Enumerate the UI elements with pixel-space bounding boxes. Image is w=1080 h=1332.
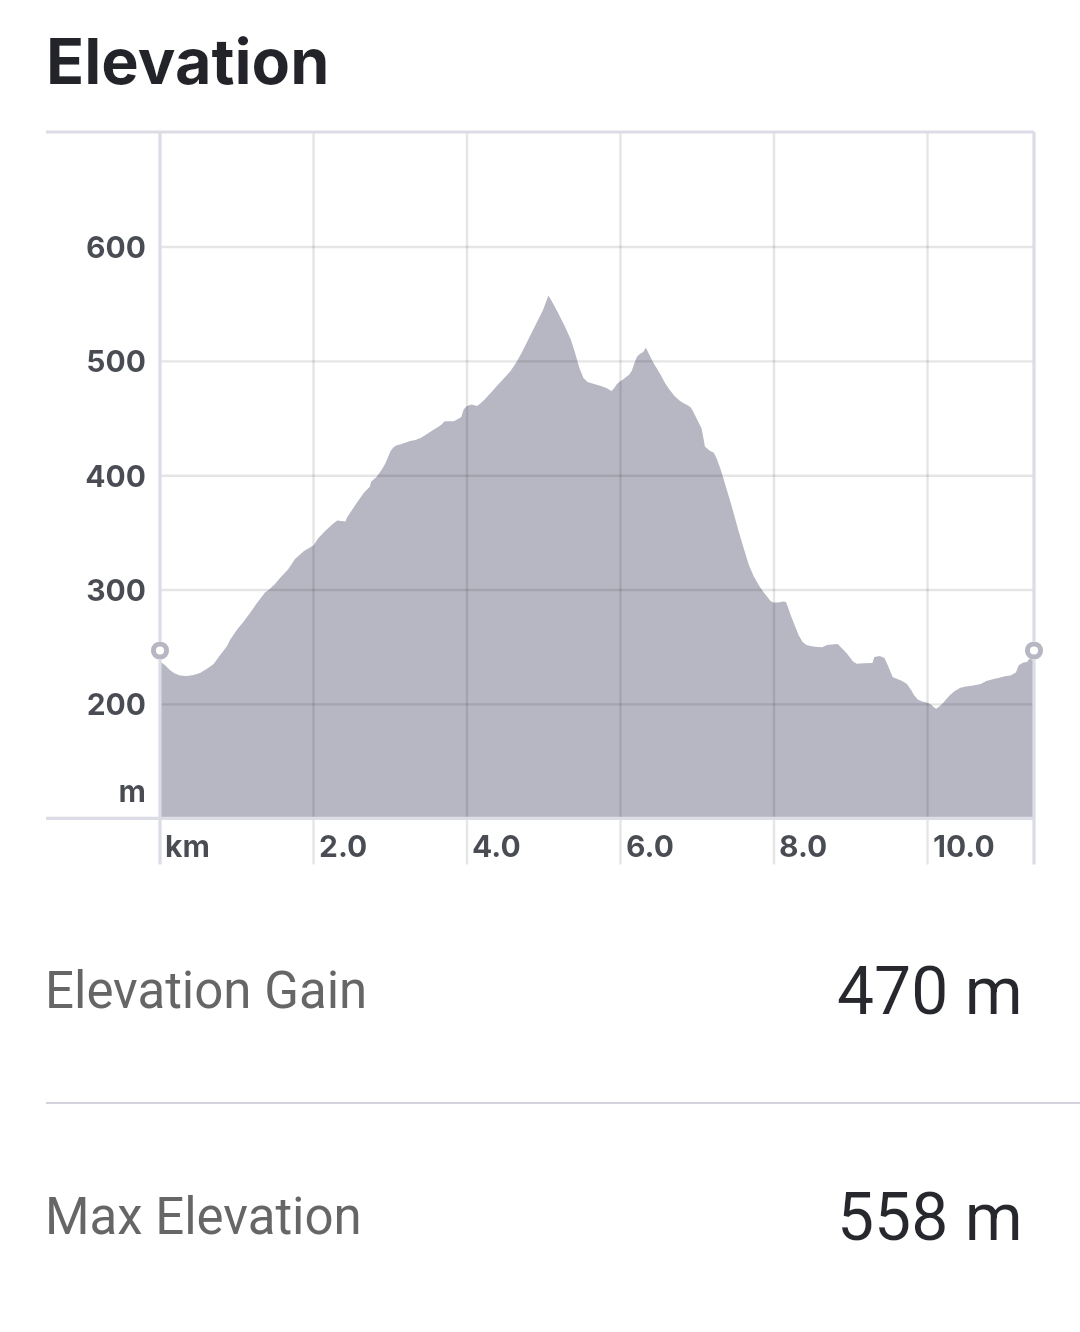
staticText: 400 [0, 458, 146, 494]
staticText: 558 m [837, 1179, 1023, 1256]
staticText: 300 [0, 572, 146, 608]
staticText: 10.0 [933, 828, 995, 864]
staticText: Elevation [46, 23, 330, 99]
staticText: 8.0 [779, 828, 828, 864]
staticText: Max Elevation [45, 1187, 362, 1247]
staticText: km [165, 828, 210, 864]
staticText: 470 m [837, 953, 1023, 1030]
button[interactable]: Elevation Gain [0, 890, 1080, 1092]
staticText: 2.0 [319, 828, 368, 864]
button[interactable]: Max Elevation [0, 1116, 1080, 1318]
staticText: m [0, 773, 146, 809]
staticText: 500 [0, 343, 146, 379]
staticText: Elevation Gain [45, 961, 368, 1021]
staticText: 600 [0, 229, 146, 265]
staticText: 6.0 [626, 828, 674, 864]
staticText: 200 [0, 686, 146, 722]
button[interactable]: Elevation profile chart [0, 110, 1080, 885]
staticText: 4.0 [472, 828, 521, 864]
